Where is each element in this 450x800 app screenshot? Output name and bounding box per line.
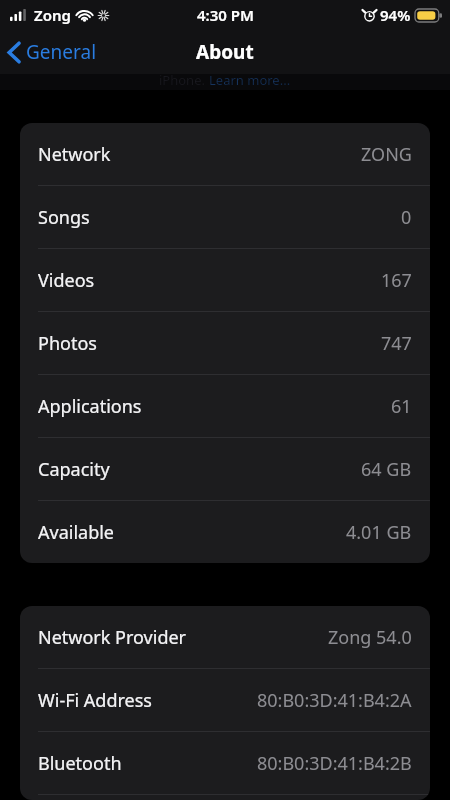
button[interactable]: Photos <box>20 312 430 374</box>
button[interactable]: Wi-Fi Address <box>20 669 430 731</box>
staticText: iPhone. <box>159 71 209 87</box>
staticText: 80:B0:3D:41:B4:2B <box>257 751 412 776</box>
staticText: Learn more... <box>209 71 291 87</box>
other: Back <box>8 42 20 63</box>
button[interactable]: Back <box>0 33 107 71</box>
button[interactable]: Available <box>20 501 430 563</box>
staticText: 167 <box>381 268 412 293</box>
button[interactable]: Network Provider <box>20 606 430 668</box>
button[interactable]: Network <box>20 123 430 185</box>
staticText: ZONG <box>361 142 412 167</box>
staticText: Wi-Fi Address <box>38 688 152 713</box>
staticText: 0 <box>401 205 412 230</box>
button[interactable]: Songs <box>20 186 430 248</box>
staticText: 4.01 GB <box>346 520 412 545</box>
staticText: 64 GB <box>361 457 412 482</box>
staticText: Photos <box>38 331 97 356</box>
staticText: Network Provider <box>38 625 187 650</box>
staticText: About <box>196 39 254 65</box>
staticText: 61 <box>391 394 412 419</box>
button[interactable]: Videos <box>20 249 430 311</box>
staticText: 94% <box>380 5 411 25</box>
staticText: Bluetooth <box>38 751 122 776</box>
staticText: Available <box>38 520 114 545</box>
staticText: Capacity <box>38 457 110 482</box>
staticText: 80:B0:3D:41:B4:2A <box>257 688 412 713</box>
button[interactable]: Capacity <box>20 438 430 500</box>
staticText: Songs <box>38 205 90 230</box>
staticText: Zong <box>34 5 71 25</box>
staticText: Applications <box>38 394 142 419</box>
staticText: General <box>26 39 97 65</box>
staticText: Videos <box>38 268 95 293</box>
button[interactable]: Applications <box>20 375 430 437</box>
button[interactable]: Bluetooth <box>20 732 430 794</box>
staticText: Network <box>38 142 111 167</box>
staticText: 747 <box>381 331 412 356</box>
staticText: Zong 54.0 <box>328 625 412 650</box>
staticText: 4:30 PM <box>197 5 254 25</box>
